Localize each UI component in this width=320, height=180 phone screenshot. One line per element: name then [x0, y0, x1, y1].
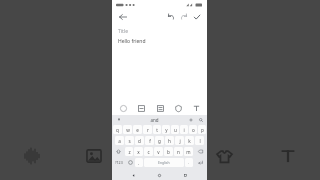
staticText: x — [137, 149, 140, 155]
staticText: t — [156, 127, 158, 133]
staticText: and — [150, 117, 159, 123]
staticText: q — [116, 127, 119, 133]
button[interactable]: g — [155, 136, 164, 145]
staticText: k — [188, 138, 191, 144]
button[interactable]: Backspace — [194, 147, 206, 156]
button[interactable]: h — [165, 136, 174, 145]
button[interactable]: l — [195, 136, 204, 145]
button[interactable]: English — [144, 158, 184, 167]
staticText: c — [147, 149, 150, 155]
staticText: v — [157, 149, 160, 155]
button[interactable]: q — [113, 125, 122, 134]
staticText: m — [186, 149, 191, 155]
button[interactable]: x — [134, 147, 143, 156]
button[interactable]: Image — [84, 146, 104, 166]
button[interactable]: Voice input — [115, 116, 122, 123]
staticText: z — [128, 149, 131, 155]
staticText: n — [177, 149, 180, 155]
button[interactable]: . — [185, 158, 193, 167]
staticText: d — [138, 138, 141, 144]
button[interactable]: c — [144, 147, 153, 156]
button[interactable]: Privacy — [172, 102, 184, 114]
button[interactable]: a — [115, 136, 124, 145]
staticText: s — [128, 138, 131, 144]
button[interactable]: Back — [116, 10, 129, 23]
button[interactable]: p — [198, 125, 206, 134]
button[interactable]: Enter — [194, 158, 206, 167]
button[interactable]: ?123 — [113, 158, 125, 167]
button[interactable]: e — [133, 125, 142, 134]
staticText: a — [118, 138, 121, 144]
button[interactable]: k — [185, 136, 194, 145]
staticText: r — [147, 127, 149, 133]
staticText: . — [188, 160, 190, 165]
staticText: English — [158, 160, 170, 165]
staticText: i — [183, 127, 185, 133]
button[interactable]: Emoji — [126, 158, 134, 167]
button[interactable]: Settings — [187, 116, 194, 123]
staticText: , — [138, 160, 140, 165]
button[interactable]: f — [145, 136, 154, 145]
button[interactable]: Back — [129, 171, 138, 180]
button[interactable]: o — [189, 125, 197, 134]
button[interactable]: n — [174, 147, 183, 156]
staticText: h — [168, 138, 171, 144]
button[interactable]: Formatting — [190, 102, 202, 114]
button[interactable]: Search — [197, 116, 204, 123]
staticText: y — [165, 127, 168, 133]
button[interactable]: Recent apps — [181, 171, 190, 180]
staticText: l — [199, 138, 201, 144]
staticText: j — [179, 138, 181, 144]
button[interactable]: t — [153, 125, 161, 134]
staticText: ?123 — [115, 160, 123, 165]
button[interactable]: Color — [117, 102, 129, 114]
button[interactable]: w — [123, 125, 132, 134]
button[interactable]: Text — [278, 146, 298, 166]
button[interactable]: Home — [155, 171, 164, 180]
staticText: e — [136, 127, 139, 133]
button[interactable]: b — [164, 147, 173, 156]
button[interactable]: Shift — [113, 147, 124, 156]
staticText: p — [201, 127, 204, 133]
button[interactable]: Undo — [164, 10, 177, 23]
button[interactable]: j — [175, 136, 184, 145]
button[interactable]: m — [184, 147, 193, 156]
button[interactable]: Apparel — [214, 146, 234, 166]
button[interactable]: Save — [190, 10, 203, 23]
button[interactable]: y — [162, 125, 170, 134]
staticText: b — [167, 149, 170, 155]
button[interactable]: Redo — [177, 10, 190, 23]
button[interactable]: r — [143, 125, 152, 134]
button[interactable]: v — [154, 147, 163, 156]
staticText: u — [174, 127, 177, 133]
button[interactable]: z — [125, 147, 133, 156]
button[interactable]: Audio — [22, 146, 42, 166]
staticText: w — [126, 127, 130, 133]
button[interactable]: and — [150, 117, 159, 123]
staticText: f — [149, 138, 151, 144]
staticText: o — [192, 127, 195, 133]
staticText: Hello friend — [118, 38, 146, 45]
button[interactable]: List — [154, 102, 166, 114]
button[interactable]: Checklist — [135, 102, 147, 114]
button[interactable]: d — [135, 136, 144, 145]
button[interactable]: s — [125, 136, 134, 145]
button[interactable]: i — [180, 125, 188, 134]
staticText: g — [158, 138, 161, 144]
staticText: Title — [118, 28, 128, 35]
button[interactable]: u — [171, 125, 179, 134]
button[interactable]: , — [135, 158, 143, 167]
